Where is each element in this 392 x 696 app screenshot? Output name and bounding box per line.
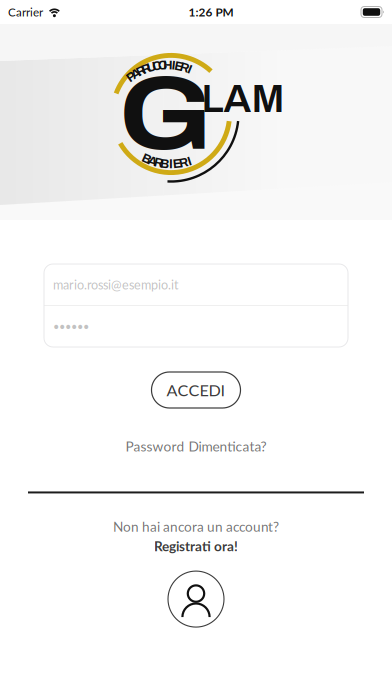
- staticText: 1:26 PM: [188, 5, 233, 19]
- staticText: Registrati ora!: [154, 538, 238, 554]
- staticText: P: [127, 70, 136, 83]
- staticText: ••••••: [53, 320, 89, 333]
- staticText: R: [179, 156, 188, 169]
- button[interactable]: ACCEDI: [151, 372, 240, 408]
- staticText: I: [187, 154, 191, 168]
- staticText: R: [141, 62, 150, 76]
- staticText: B: [142, 152, 151, 166]
- staticText: A: [148, 154, 157, 168]
- staticText: B: [160, 157, 169, 170]
- staticText: C: [158, 58, 167, 72]
- staticText: I: [169, 157, 173, 171]
- staticText: Carrier: [8, 5, 43, 19]
- staticText: R: [180, 61, 189, 74]
- staticText: mario.rossi@esempio.it: [53, 277, 179, 292]
- staticText: A: [131, 67, 140, 80]
- staticText: R: [154, 156, 163, 169]
- staticText: Non hai ancora un account?: [113, 518, 279, 535]
- staticText: H: [163, 58, 173, 72]
- staticText: Password Dimenticata?: [125, 438, 266, 454]
- staticText: ACCEDI: [166, 380, 225, 400]
- staticText: G: [124, 58, 207, 171]
- button[interactable]: Password Dimenticata?: [125, 433, 266, 459]
- staticText: LAM: [201, 78, 284, 120]
- staticText: C: [152, 59, 161, 73]
- staticText: U: [147, 60, 156, 74]
- staticText: I: [188, 63, 192, 76]
- button[interactable]: Registrati ora!: [154, 538, 238, 554]
- staticText: E: [175, 59, 184, 73]
- staticText: R: [136, 64, 145, 78]
- staticText: I: [172, 58, 176, 72]
- staticText: E: [173, 157, 182, 170]
- button[interactable]: Crea un account: [168, 571, 224, 627]
